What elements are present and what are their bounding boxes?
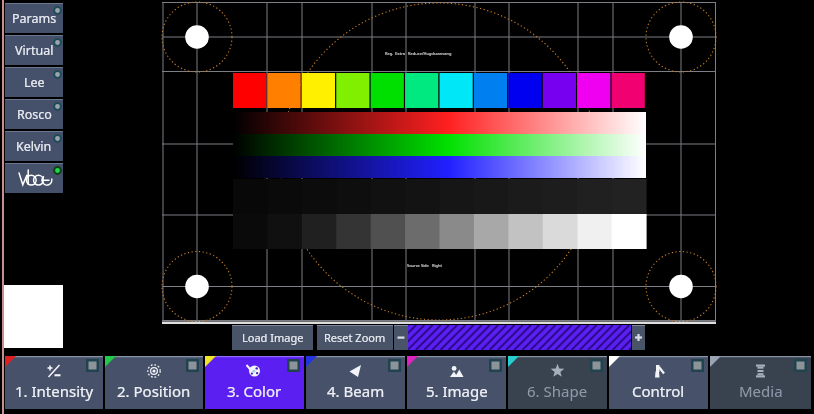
button[interactable]: Zoom out	[394, 325, 408, 350]
staticText: Control	[632, 381, 685, 401]
button[interactable]: Rosco	[5, 99, 63, 129]
staticText: Reset Zoom	[324, 330, 386, 345]
button[interactable]: Kelvin	[5, 131, 63, 161]
button[interactable]: Lee	[5, 67, 63, 97]
staticText: Source Side Right	[407, 263, 442, 268]
button[interactable]: Virtual	[5, 35, 63, 65]
button[interactable]: 3. Color	[205, 356, 304, 409]
staticText: Virtual	[15, 42, 54, 59]
button[interactable]: Zoom in	[632, 325, 645, 350]
staticText: Load Image	[242, 330, 304, 345]
staticText: Media	[739, 381, 783, 401]
button[interactable]: Reset Zoom	[317, 325, 393, 350]
button[interactable]: 2. Position	[105, 356, 203, 409]
staticText: 1. Intensity	[15, 381, 94, 401]
button[interactable]: 4. Beam	[306, 356, 405, 409]
staticText: Reg. Extra Reduce/Hugdscanvang	[385, 51, 452, 56]
button[interactable]: 6. Shape	[508, 356, 607, 409]
staticText: 6. Shape	[527, 381, 588, 401]
button[interactable]: Params	[5, 3, 63, 33]
button[interactable]: 1. Intensity	[5, 356, 103, 409]
button[interactable]	[5, 163, 63, 193]
staticText: 2. Position	[117, 381, 191, 401]
button[interactable]	[408, 325, 631, 350]
button[interactable]: Media	[710, 356, 811, 409]
staticText: Kelvin	[16, 138, 52, 155]
staticText: Params	[12, 10, 57, 27]
staticText: 3. Color	[227, 381, 282, 401]
staticText: 5. Image	[426, 381, 488, 401]
button[interactable]: 5. Image	[407, 356, 506, 409]
staticText: Lee	[24, 74, 45, 91]
button[interactable]: Load Image	[232, 325, 313, 350]
button[interactable]: Control	[609, 356, 708, 409]
staticText: 4. Beam	[327, 381, 385, 401]
staticText: Rosco	[17, 106, 52, 123]
